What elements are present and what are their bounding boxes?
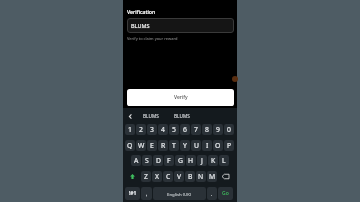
staticText: I [206,141,209,150]
staticText: N [198,172,204,181]
staticText: 8 [205,125,209,134]
button[interactable]: Z [141,171,151,182]
other: Profile [232,76,238,82]
staticText: Verify [174,94,188,101]
staticText: T [172,141,176,150]
button[interactable]: X [152,171,162,182]
staticText: P [227,141,232,150]
staticText: English (UK) [167,191,192,197]
staticText: !#1 [129,190,137,197]
staticText: L [222,156,226,165]
staticText: E [150,141,154,150]
button[interactable]: Verify [127,89,234,106]
button[interactable]: G [175,155,185,166]
button[interactable]: C [163,171,173,182]
button[interactable]: I [202,140,212,151]
staticText: D [156,156,161,165]
staticText: 7 [194,125,198,134]
button[interactable]: BLUMS [137,109,165,123]
button[interactable]: P [224,140,234,151]
staticText: W [138,141,145,150]
button[interactable]: F [164,155,174,166]
staticText: . [211,190,213,197]
button[interactable]: BLUMS [127,18,234,33]
staticText: BLUMS [143,113,159,119]
button[interactable]: J [197,155,207,166]
staticText: G [178,156,183,165]
staticText: 3 [150,125,154,134]
button[interactable]: BLUMS [165,109,199,123]
staticText: Y [183,141,187,150]
button[interactable]: W [136,140,146,151]
staticText: Z [144,172,148,181]
staticText: 5 [172,125,176,134]
button[interactable]: R [158,140,168,151]
button[interactable]: V [174,171,184,182]
staticText: O [215,141,221,150]
staticText: H [188,156,194,165]
staticText: 1 [128,125,132,134]
staticText: X [155,172,159,181]
button[interactable]: E [147,140,157,151]
staticText: 2 [139,125,143,134]
button[interactable]: 5 [169,124,179,135]
button[interactable]: 3 [147,124,157,135]
button[interactable]: U [191,140,201,151]
staticText: 4 [161,125,165,134]
button[interactable]: A [131,155,141,166]
staticText: U [194,141,199,150]
button[interactable]: . [207,187,217,200]
staticText: C [166,172,171,181]
button[interactable]: B [185,171,195,182]
button[interactable]: 4 [158,124,168,135]
button[interactable]: Q [125,140,135,151]
staticText: 0 [227,125,231,134]
button[interactable]: Go [218,187,233,200]
button[interactable]: , [141,187,152,200]
button[interactable]: O [213,140,223,151]
button[interactable]: 1 [125,124,135,135]
button[interactable]: 9 [213,124,223,135]
button[interactable]: 6 [180,124,190,135]
button[interactable]: D [153,155,163,166]
button[interactable]: 0 [224,124,234,135]
button[interactable]: Backspace [218,171,233,182]
button[interactable]: K [208,155,218,166]
button[interactable]: H [186,155,196,166]
staticText: F [167,156,171,165]
staticText: Verification [127,8,156,15]
button[interactable]: Symbols [125,187,140,200]
staticText: 6 [183,125,187,134]
staticText: R [161,141,166,150]
staticText: BLUMS [131,22,150,29]
staticText: Go [222,190,229,197]
staticText: K [211,156,216,165]
button[interactable]: English (UK) [153,187,206,200]
staticText: S [145,156,149,165]
button[interactable]: 2 [136,124,146,135]
staticText: M [209,172,216,181]
staticText: BLUMS [174,113,190,119]
button[interactable]: L [219,155,229,166]
staticText: A [134,156,139,165]
staticText: V [177,172,182,181]
staticText: Verify to claim your reward [127,36,178,41]
button[interactable]: Shift [125,171,140,182]
button[interactable]: 7 [191,124,201,135]
button[interactable]: N [196,171,206,182]
button[interactable]: M [207,171,217,182]
button[interactable]: 8 [202,124,212,135]
button[interactable]: T [169,140,179,151]
staticText: J [201,156,203,165]
staticText: 9 [216,125,220,134]
staticText: , [146,190,148,197]
button[interactable]: S [142,155,152,166]
staticText: B [188,172,193,181]
button[interactable]: Previous suggestions [123,109,137,123]
staticText: Q [127,141,133,150]
button[interactable]: Y [180,140,190,151]
